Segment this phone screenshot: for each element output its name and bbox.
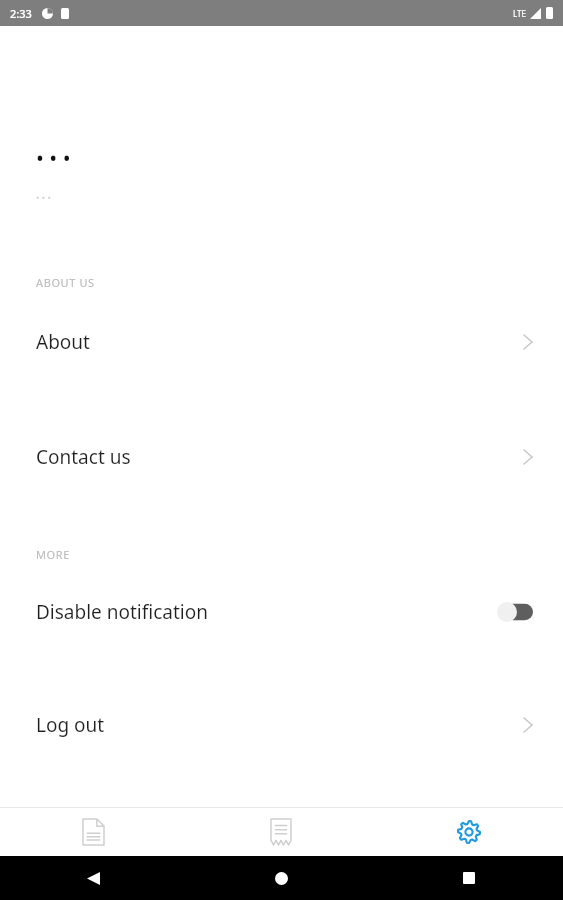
staticText: MORE	[36, 547, 70, 562]
button[interactable]: Recents	[375, 856, 563, 900]
button[interactable]: Log out	[0, 703, 563, 747]
staticText: • • •	[36, 191, 51, 203]
staticText: Log out	[36, 712, 105, 738]
staticText: ABOUT US	[36, 275, 95, 290]
button[interactable]: Contact us	[0, 435, 563, 479]
button[interactable]: Documents	[0, 808, 187, 856]
staticText: 2:33	[10, 6, 32, 21]
staticText: • • •	[36, 144, 71, 173]
button[interactable]: About	[0, 320, 563, 364]
button[interactable]: Settings	[375, 808, 563, 856]
button[interactable]: Home	[187, 856, 375, 900]
staticText: Disable notification	[36, 599, 208, 625]
staticText: LTE	[513, 8, 526, 19]
staticText: About	[36, 329, 90, 355]
button[interactable]: Receipts	[187, 808, 375, 856]
button[interactable]: Back	[0, 856, 187, 900]
button[interactable]: Disable notification toggle	[497, 602, 533, 622]
staticText: Contact us	[36, 444, 131, 470]
button[interactable]: Disable notification	[0, 590, 563, 634]
